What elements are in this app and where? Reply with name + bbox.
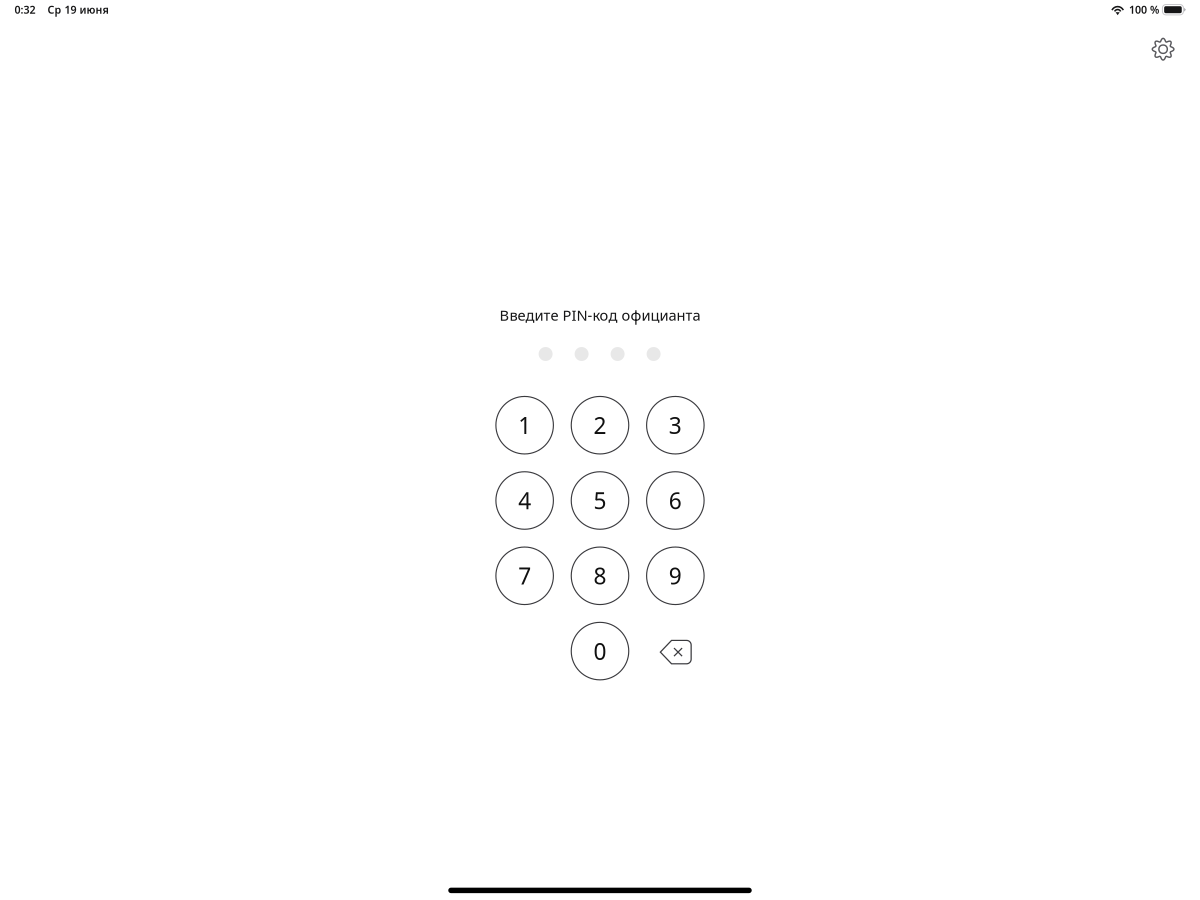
button[interactable]: 9 [647,547,704,604]
staticText: Ср 19 июня [47,3,108,17]
staticText: 5 [593,485,606,515]
button[interactable]: 0 [571,622,629,680]
button[interactable]: Delete [647,623,704,681]
staticText: 8 [593,561,606,591]
staticText: 0 [593,636,606,666]
button[interactable]: 2 [571,396,629,454]
button[interactable]: 7 [496,547,553,604]
staticText: 100 % [1129,3,1159,17]
button[interactable]: 6 [647,472,704,529]
button[interactable]: 4 [496,472,553,529]
staticText: 0:32 [14,3,35,17]
button[interactable]: 5 [571,472,629,529]
staticText: 9 [669,561,682,591]
button[interactable]: 1 [496,396,553,454]
staticText: 4 [518,485,531,515]
staticText: 1 [518,410,531,440]
staticText: 3 [669,410,682,440]
button[interactable]: 3 [647,396,704,454]
staticText: 2 [593,410,606,440]
staticText: 7 [518,561,531,591]
button[interactable]: 8 [571,547,629,604]
staticText: Введите PIN-код официанта [499,305,700,325]
staticText: 6 [669,485,682,515]
button[interactable]: Settings [1141,27,1185,71]
